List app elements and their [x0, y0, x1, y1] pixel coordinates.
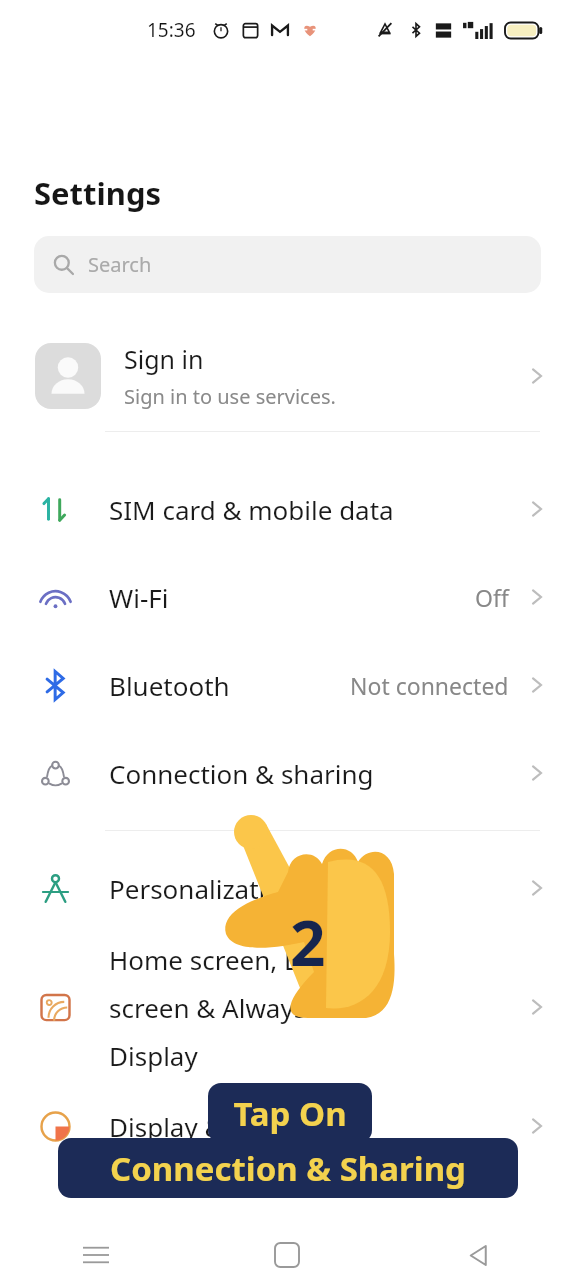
button[interactable]: Tap On	[208, 1083, 372, 1143]
staticText: Display & brightness	[109, 1109, 361, 1144]
staticText: Wi-Fi	[109, 580, 169, 615]
button[interactable]: Connection & Sharing	[58, 1138, 518, 1198]
staticText: Sign in	[124, 342, 204, 376]
staticText: Search	[88, 251, 152, 278]
button[interactable]: Sign in	[0, 321, 575, 431]
staticText: Home screen, Lock screen & Always-On Dis…	[109, 942, 351, 1073]
staticText: Bluetooth	[109, 668, 230, 703]
button[interactable]: Search	[34, 236, 541, 293]
staticText: 15:36	[147, 17, 196, 43]
button[interactable]: Personalization	[0, 844, 575, 932]
button[interactable]: Home	[191, 1225, 383, 1285]
staticText: SIM card & mobile data	[109, 492, 394, 527]
staticText: Tap On	[233, 1091, 347, 1136]
staticText: Not connected	[350, 670, 509, 701]
button[interactable]: SIM card & mobile data	[0, 465, 575, 553]
button[interactable]: Bluetooth	[0, 641, 575, 729]
button[interactable]: Display & brightness	[0, 1082, 575, 1170]
button[interactable]: Recent apps	[0, 1225, 191, 1285]
staticText: Connection & Sharing	[110, 1146, 466, 1191]
staticText: Personalization	[109, 871, 298, 906]
button[interactable]: Home screen, Lock screen & Always-On Dis…	[0, 932, 575, 1082]
button[interactable]: Wi-Fi	[0, 553, 575, 641]
button[interactable]: Back	[383, 1225, 575, 1285]
staticText: Off	[475, 582, 509, 613]
staticText: Connection & sharing	[109, 756, 374, 791]
staticText: 2	[290, 900, 326, 984]
staticText: Sign in to use services.	[124, 383, 336, 410]
staticText: Settings	[34, 172, 162, 214]
button[interactable]: Connection & sharing	[0, 729, 575, 817]
